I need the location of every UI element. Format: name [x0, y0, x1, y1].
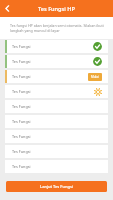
button[interactable]: Tes Fungsi [5, 160, 108, 173]
staticText: Tes Fungsi HP [38, 5, 75, 13]
staticText: Mulai [91, 75, 99, 79]
staticText: Tes Fungsi [12, 89, 31, 94]
button[interactable]: Mulai [88, 73, 102, 81]
staticText: Tes Fungsi [12, 104, 31, 109]
staticText: Tes Fungsi [12, 164, 31, 169]
button[interactable]: Tes Fungsi [5, 70, 108, 83]
staticText: Tes Fungsi [12, 74, 31, 79]
button[interactable]: Tes Fungsi [5, 55, 108, 68]
staticText: Tes Fungsi [12, 44, 31, 49]
button[interactable]: Lanjut Tes Fungsi [6, 181, 107, 192]
staticText: Tes Fungsi [12, 119, 31, 124]
button[interactable]: Back [0, 0, 14, 17]
button[interactable]: Tes Fungsi [5, 100, 108, 113]
staticText: Tes Fungsi [12, 134, 31, 139]
button[interactable]: Tes Fungsi [5, 40, 108, 53]
staticText: Tes Fungsi [12, 149, 31, 154]
button[interactable]: Tes Fungsi [5, 145, 108, 158]
staticText: Tes Fungsi [12, 59, 31, 64]
staticText: Lanjut Tes Fungsi [40, 184, 73, 189]
button[interactable]: Tes Fungsi [5, 85, 108, 98]
button[interactable]: Tes Fungsi [5, 115, 108, 128]
staticText: Tes fungsi HP akan berjalan semi otomati… [10, 23, 104, 33]
button[interactable]: Tes Fungsi [5, 130, 108, 143]
